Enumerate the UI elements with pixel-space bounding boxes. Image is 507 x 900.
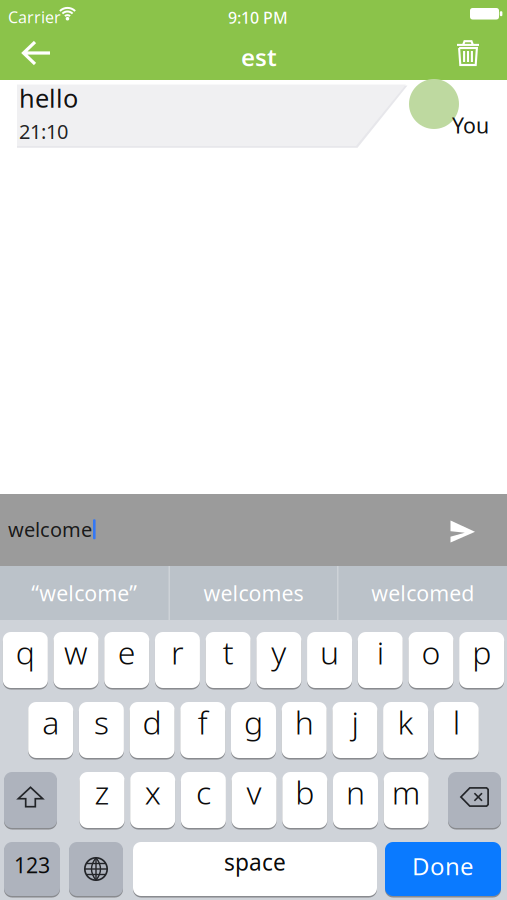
staticText: n bbox=[346, 771, 365, 813]
button[interactable]: p bbox=[459, 632, 504, 688]
button[interactable]: z bbox=[79, 772, 124, 828]
button[interactable]: k bbox=[383, 702, 428, 758]
button[interactable]: t bbox=[206, 632, 251, 688]
staticText: z bbox=[94, 771, 109, 813]
staticText: “welcome” bbox=[31, 579, 137, 607]
staticText: You bbox=[452, 111, 489, 139]
staticText: welcomed bbox=[371, 579, 474, 607]
staticText: 21:10 bbox=[19, 118, 68, 145]
button[interactable]: o bbox=[408, 632, 453, 688]
button[interactable]: x bbox=[130, 772, 175, 828]
button[interactable]: h bbox=[282, 702, 327, 758]
button[interactable] bbox=[448, 33, 488, 73]
button[interactable]: i bbox=[358, 632, 403, 688]
button[interactable]: v bbox=[232, 772, 277, 828]
staticText: d bbox=[143, 701, 162, 743]
staticText: q bbox=[16, 631, 35, 673]
staticText: y bbox=[271, 631, 286, 673]
button[interactable]: e bbox=[104, 632, 149, 688]
button[interactable]: a bbox=[28, 702, 73, 758]
staticText: a bbox=[42, 701, 59, 743]
staticText: h bbox=[295, 701, 314, 743]
staticText: hello bbox=[19, 81, 78, 115]
button[interactable]: r bbox=[155, 632, 200, 688]
button[interactable]: w bbox=[54, 632, 99, 688]
staticText: space bbox=[224, 847, 286, 877]
button[interactable] bbox=[69, 842, 123, 896]
button[interactable]: 123 bbox=[4, 842, 60, 896]
staticText: g bbox=[244, 701, 263, 743]
button[interactable]: welcomed bbox=[338, 566, 507, 620]
staticText: c bbox=[196, 771, 211, 813]
staticText: est bbox=[241, 41, 277, 73]
staticText: e bbox=[118, 631, 136, 673]
button[interactable]: c bbox=[181, 772, 226, 828]
staticText: 123 bbox=[14, 851, 50, 879]
button[interactable]: u bbox=[307, 632, 352, 688]
staticText: p bbox=[472, 631, 491, 673]
button[interactable]: welcomes bbox=[170, 566, 337, 620]
button[interactable]: “welcome” bbox=[0, 566, 168, 620]
staticText: Done bbox=[412, 850, 474, 882]
staticText: o bbox=[421, 631, 440, 673]
button[interactable]: j bbox=[332, 702, 377, 758]
staticText: w bbox=[64, 631, 88, 673]
staticText: x bbox=[145, 771, 161, 813]
button[interactable]: y bbox=[256, 632, 301, 688]
staticText: 9:10 PM bbox=[228, 7, 288, 28]
button[interactable] bbox=[14, 33, 58, 73]
staticText: welcome bbox=[8, 516, 92, 543]
button[interactable]: Done bbox=[385, 842, 501, 896]
button[interactable]: q bbox=[3, 632, 48, 688]
staticText: k bbox=[398, 701, 414, 743]
button[interactable]: g bbox=[231, 702, 276, 758]
staticText: Carrier bbox=[8, 6, 61, 28]
staticText: l bbox=[453, 701, 460, 743]
button[interactable]: f bbox=[180, 702, 225, 758]
staticText: s bbox=[94, 701, 109, 743]
button[interactable]: b bbox=[282, 772, 327, 828]
staticText: v bbox=[247, 771, 262, 813]
staticText: j bbox=[351, 701, 358, 743]
button[interactable]: s bbox=[79, 702, 124, 758]
staticText: m bbox=[392, 771, 421, 813]
button[interactable]: l bbox=[434, 702, 479, 758]
button[interactable]: space bbox=[133, 842, 377, 896]
button[interactable]: n bbox=[333, 772, 378, 828]
button[interactable]: welcome bbox=[8, 516, 96, 543]
staticText: i bbox=[377, 631, 384, 673]
button[interactable]: d bbox=[130, 702, 175, 758]
button[interactable] bbox=[448, 772, 501, 828]
staticText: r bbox=[171, 631, 184, 673]
staticText: welcomes bbox=[203, 579, 303, 607]
staticText: f bbox=[198, 701, 208, 743]
button[interactable] bbox=[4, 772, 57, 828]
button[interactable] bbox=[442, 512, 483, 551]
staticText: b bbox=[295, 771, 314, 813]
staticText: t bbox=[223, 631, 234, 673]
button[interactable]: m bbox=[384, 772, 429, 828]
staticText: u bbox=[320, 631, 339, 673]
